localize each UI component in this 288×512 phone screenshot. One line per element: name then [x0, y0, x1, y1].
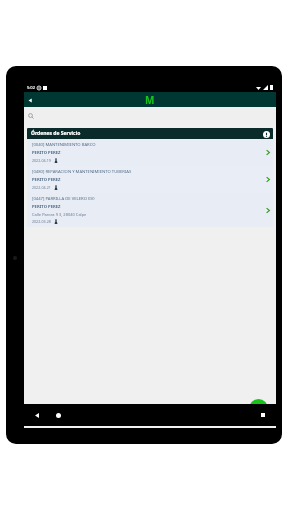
button[interactable]: Órdenes de Servicio — [27, 128, 273, 139]
staticText: PERITO PEREZ — [32, 177, 61, 183]
staticText: [0040] MANTENIMIENTO BARCO — [32, 142, 96, 148]
staticText: [0447] PARRILLA DE VELERO (IV) — [32, 196, 95, 202]
staticText: 2022-03-28 — [32, 219, 51, 224]
staticText: 2022-04-21 — [32, 185, 51, 190]
staticText: 5:02 — [27, 85, 35, 90]
button[interactable]: Information — [262, 130, 270, 138]
staticText: Órdenes de Servicio — [31, 130, 81, 137]
button[interactable]: Back — [32, 410, 42, 420]
staticText: 2022-04-19 — [32, 158, 51, 163]
button[interactable]: [0040] MANTENIMIENTO BARCO — [27, 139, 273, 166]
staticText: M — [145, 93, 155, 107]
staticText: PERITO PEREZ — [32, 150, 61, 156]
staticText: PERITO PEREZ — [32, 204, 61, 210]
button[interactable]: [0447] PARRILLA DE VELERO (IV) — [27, 193, 273, 227]
button[interactable]: Home — [53, 410, 63, 420]
staticText: Calle Parora 9 3, 28040 Calpe — [32, 212, 87, 217]
button[interactable]: Recent apps — [258, 410, 268, 420]
button[interactable]: Back — [24, 94, 36, 106]
button[interactable]: Add order — [249, 399, 268, 418]
button[interactable]: [0480] REPARACION Y MANTENIMIENTO TUBERI… — [27, 166, 273, 193]
button[interactable]: Search — [24, 107, 276, 125]
staticText: [0480] REPARACION Y MANTENIMIENTO TUBERI… — [32, 169, 132, 175]
